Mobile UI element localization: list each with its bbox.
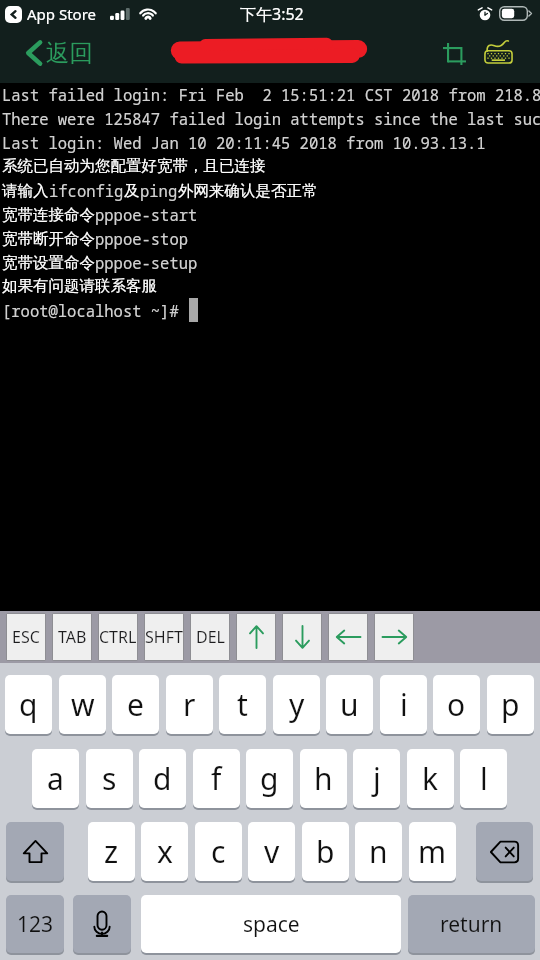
staticText: u xyxy=(340,684,359,725)
button[interactable]: Move left xyxy=(329,614,367,660)
button[interactable]: w xyxy=(59,675,106,734)
staticText: 返回 xyxy=(46,38,93,68)
staticText: i xyxy=(400,684,408,725)
staticText: Last failed login: Fri Feb 2 15:51:21 CS… xyxy=(2,84,540,105)
button[interactable]: return xyxy=(408,895,535,953)
staticText: ESC xyxy=(12,626,40,648)
staticText: space xyxy=(243,910,300,939)
staticText: b xyxy=(316,831,335,872)
staticText: SHFT xyxy=(145,626,183,648)
staticText: o xyxy=(447,684,466,725)
button[interactable]: l xyxy=(460,749,507,808)
button[interactable]: Shift xyxy=(6,822,64,881)
button[interactable]: TAB xyxy=(53,614,91,660)
staticText: There were 125847 failed login attempts … xyxy=(2,108,540,129)
button[interactable]: b xyxy=(302,822,349,881)
button[interactable]: Move right xyxy=(375,614,413,660)
staticText: k xyxy=(422,758,439,799)
button[interactable]: DEL xyxy=(191,614,229,660)
button[interactable]: i xyxy=(380,675,427,734)
button[interactable]: Crop xyxy=(437,37,471,71)
button[interactable]: g xyxy=(246,749,293,808)
staticText: g xyxy=(260,758,279,799)
staticText: TAB xyxy=(58,626,87,648)
button[interactable]: c xyxy=(195,822,242,881)
staticText: 如果有问题请联系客服 xyxy=(2,276,157,296)
staticText: Last login: Wed Jan 10 20:11:45 2018 fro… xyxy=(2,132,486,153)
button[interactable]: t xyxy=(219,675,266,734)
button[interactable]: x xyxy=(141,822,188,881)
staticText: ping xyxy=(140,180,178,201)
button[interactable]: Move up xyxy=(237,614,275,660)
button[interactable]: Backspace xyxy=(476,822,533,881)
staticText: 及 xyxy=(124,181,140,201)
staticText: h xyxy=(314,758,333,799)
button[interactable]: j xyxy=(353,749,400,808)
button[interactable]: y xyxy=(273,675,320,734)
button[interactable]: SHFT xyxy=(145,614,183,660)
staticText: x xyxy=(157,831,173,872)
staticText: 宽带设置命令 xyxy=(2,253,95,273)
staticText: 宽带断开命令 xyxy=(2,229,95,249)
button[interactable]: q xyxy=(5,675,52,734)
button[interactable]: CTRL xyxy=(99,614,137,660)
staticText: y xyxy=(289,684,305,725)
staticText: pppoe-start xyxy=(95,204,198,225)
staticText: q xyxy=(19,684,38,725)
button[interactable]: space xyxy=(141,895,401,953)
staticText: d xyxy=(153,758,172,799)
staticText: 宽带连接命令 xyxy=(2,205,95,225)
staticText: ifconfig xyxy=(49,180,124,201)
button[interactable]: u xyxy=(326,675,373,734)
staticText: DEL xyxy=(196,626,225,648)
button[interactable]: f xyxy=(193,749,240,808)
staticText: pppoe-stop xyxy=(95,228,189,249)
staticText: c xyxy=(211,831,226,872)
button[interactable]: Dictation xyxy=(73,895,131,953)
button[interactable]: a xyxy=(32,749,79,808)
staticText: v xyxy=(264,831,280,872)
button[interactable]: p xyxy=(487,675,534,734)
staticText: [root@localhost ~]# xyxy=(2,300,189,321)
button[interactable]: s xyxy=(86,749,133,808)
staticText: j xyxy=(373,758,381,799)
staticText: s xyxy=(102,758,117,799)
button[interactable]: Move down xyxy=(283,614,321,660)
staticText: return xyxy=(440,910,503,939)
button[interactable]: 123 xyxy=(6,895,64,953)
staticText: 下午3:52 xyxy=(240,3,304,25)
staticText: pppoe-setup xyxy=(95,252,198,273)
button[interactable]: h xyxy=(300,749,347,808)
staticText: 请输入 xyxy=(2,181,49,201)
staticText: l xyxy=(480,758,488,799)
staticText: z xyxy=(104,831,119,872)
button[interactable]: r xyxy=(166,675,213,734)
staticText: f xyxy=(211,758,222,799)
staticText: m xyxy=(418,831,447,872)
button[interactable]: ESC xyxy=(7,614,45,660)
staticText: 外网来确认是否正常 xyxy=(178,181,318,201)
button[interactable]: Keyboard xyxy=(480,36,516,68)
button[interactable]: k xyxy=(407,749,454,808)
button[interactable]: z xyxy=(88,822,135,881)
button[interactable]: e xyxy=(112,675,159,734)
button[interactable]: d xyxy=(139,749,186,808)
staticText: App Store xyxy=(27,4,97,24)
staticText: p xyxy=(501,684,520,725)
staticText: n xyxy=(369,831,388,872)
staticText: CTRL xyxy=(99,626,137,648)
staticText: 系统已自动为您配置好宽带，且已连接 xyxy=(2,156,266,176)
staticText: r xyxy=(183,684,196,725)
button[interactable]: m xyxy=(409,822,456,881)
staticText: w xyxy=(71,684,95,725)
button[interactable]: n xyxy=(355,822,402,881)
staticText: t xyxy=(237,684,248,725)
button[interactable]: o xyxy=(433,675,480,734)
staticText: e xyxy=(127,684,144,725)
staticText: a xyxy=(47,758,64,799)
button[interactable]: v xyxy=(248,822,295,881)
staticText: 123 xyxy=(17,910,54,939)
button[interactable]: 返回 xyxy=(0,34,103,72)
